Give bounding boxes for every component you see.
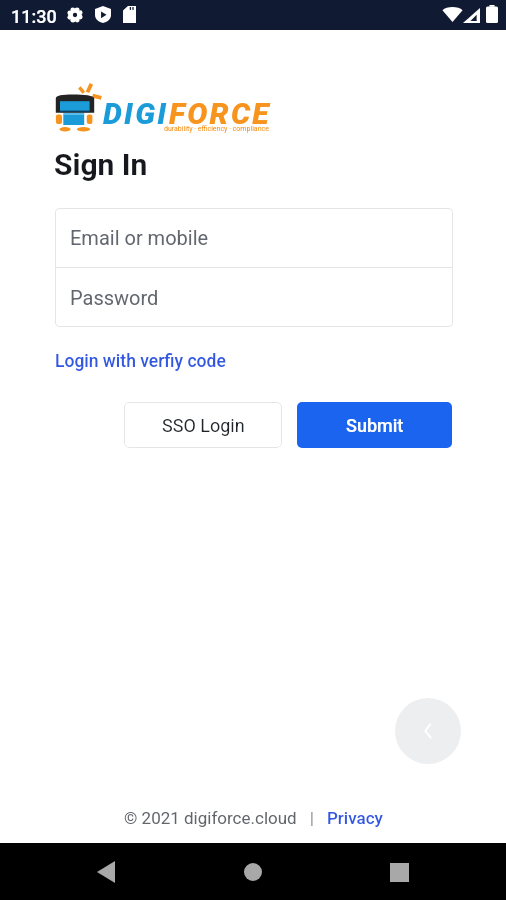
staticText: © 2021 digiforce.cloud xyxy=(124,808,297,828)
staticText: Login with verfiy code xyxy=(55,351,226,372)
button[interactable]: Back xyxy=(395,698,461,764)
staticText: Password xyxy=(70,286,159,309)
staticText: durability · efficiency · compliance xyxy=(164,125,269,133)
staticText: Sign In xyxy=(54,147,148,182)
button[interactable]: Submit xyxy=(297,402,452,448)
button[interactable]: Home xyxy=(229,848,277,896)
button[interactable]: SSO Login xyxy=(124,402,282,448)
button[interactable]: Back xyxy=(82,848,130,896)
button[interactable]: Password xyxy=(55,268,453,327)
staticText: Submit xyxy=(346,415,404,436)
staticText: Privacy xyxy=(327,808,383,828)
staticText: FORCE xyxy=(169,96,271,131)
button[interactable]: Login with verfiy code xyxy=(55,351,226,372)
staticText: | xyxy=(297,808,327,828)
staticText: Email or mobile xyxy=(70,226,209,249)
staticText: DIGI xyxy=(103,96,169,131)
button[interactable]: Email or mobile xyxy=(55,208,453,267)
staticText: 11:30 xyxy=(11,6,57,27)
button[interactable]: Recents xyxy=(375,848,423,896)
staticText: SSO Login xyxy=(162,415,245,436)
button[interactable]: Privacy xyxy=(327,808,383,828)
